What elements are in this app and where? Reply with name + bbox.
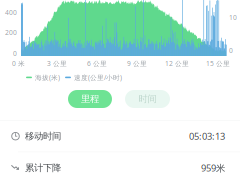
staticText: 速度(公里/小时)	[74, 73, 122, 82]
staticText: 200	[5, 28, 17, 37]
staticText: 05:03:13	[189, 130, 225, 142]
staticText: 海拔(米)	[35, 73, 60, 82]
staticText: 10	[229, 13, 237, 22]
staticText: 时间	[138, 93, 156, 105]
staticText: 累计下降	[25, 162, 61, 174]
staticText: 移动时间	[25, 130, 61, 142]
staticText: 里程	[81, 93, 99, 105]
staticText: 959米	[201, 162, 225, 174]
staticText: 15 公里	[206, 59, 230, 68]
button[interactable]: 时间	[125, 90, 170, 108]
staticText: 6 公里	[87, 59, 107, 68]
button[interactable]: 移动时间	[0, 121, 240, 152]
staticText: 400	[5, 8, 17, 17]
button[interactable]: 里程	[68, 90, 112, 108]
staticText: 0 米	[12, 59, 25, 68]
staticText: 9 公里	[127, 59, 147, 68]
staticText: 0	[13, 49, 17, 58]
button[interactable]: 累计下降	[0, 152, 240, 180]
staticText: 3 公里	[47, 59, 67, 68]
staticText: 12 公里	[165, 59, 189, 68]
staticText: 0	[229, 46, 233, 55]
